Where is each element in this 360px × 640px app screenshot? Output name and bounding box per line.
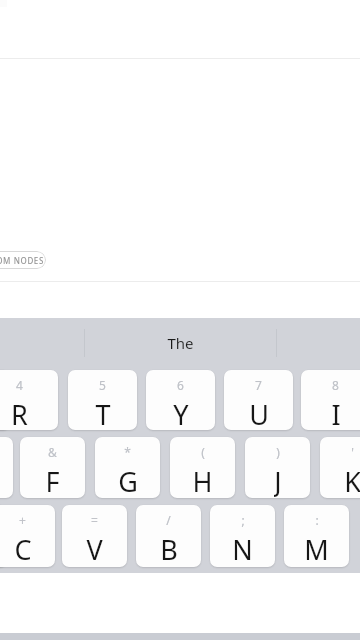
button[interactable]: 4 bbox=[0, 370, 58, 430]
staticText: 5 bbox=[99, 377, 106, 393]
button[interactable]: ) bbox=[245, 437, 310, 498]
button[interactable]: The bbox=[85, 318, 276, 368]
button[interactable]: 8 bbox=[301, 370, 360, 430]
button[interactable]: 5 bbox=[68, 370, 137, 430]
staticText: T bbox=[95, 396, 111, 430]
staticText: * bbox=[124, 444, 131, 460]
staticText: V bbox=[86, 531, 103, 567]
button[interactable]: ' bbox=[320, 437, 360, 498]
staticText: ; bbox=[241, 512, 245, 528]
staticText: = bbox=[91, 512, 98, 528]
staticText: : bbox=[315, 512, 319, 528]
button[interactable]: ; bbox=[210, 505, 275, 567]
button[interactable]: $ bbox=[0, 437, 13, 498]
button[interactable]: ( bbox=[170, 437, 235, 498]
staticText: G bbox=[118, 463, 138, 498]
staticText: ) bbox=[276, 444, 280, 460]
staticText: J bbox=[274, 463, 282, 498]
staticText: M bbox=[304, 531, 329, 567]
staticText: / bbox=[166, 512, 171, 528]
staticText: I bbox=[331, 396, 341, 430]
staticText: H bbox=[192, 463, 213, 498]
staticText: Y bbox=[173, 396, 189, 430]
staticText: 4 bbox=[16, 377, 23, 393]
staticText: N bbox=[232, 531, 253, 567]
button[interactable]: : bbox=[284, 505, 349, 567]
staticText: U bbox=[249, 396, 269, 430]
staticText: C bbox=[14, 531, 32, 567]
button[interactable]: * bbox=[95, 437, 160, 498]
button[interactable]: = bbox=[62, 505, 127, 567]
staticText: K bbox=[344, 463, 360, 498]
staticText: 6 bbox=[177, 377, 184, 393]
button[interactable]: + bbox=[0, 505, 55, 567]
button[interactable]: / bbox=[136, 505, 201, 567]
staticText: R bbox=[11, 396, 28, 430]
staticText: B bbox=[160, 531, 178, 567]
staticText: CUSTOM NODES bbox=[0, 255, 44, 266]
staticText: + bbox=[19, 512, 26, 528]
button[interactable]: 6 bbox=[146, 370, 215, 430]
staticText: F bbox=[45, 463, 60, 498]
staticText: The bbox=[167, 333, 194, 353]
button[interactable]: & bbox=[20, 437, 85, 498]
staticText: & bbox=[48, 444, 57, 460]
button[interactable]: CUSTOM NODES bbox=[0, 251, 46, 269]
staticText: 7 bbox=[255, 377, 262, 393]
staticText: 8 bbox=[332, 377, 339, 393]
button[interactable]: 7 bbox=[224, 370, 293, 430]
staticText: ' bbox=[351, 444, 354, 460]
staticText: ( bbox=[201, 444, 205, 460]
